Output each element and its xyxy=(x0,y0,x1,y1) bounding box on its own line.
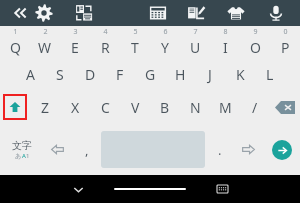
staticText: X xyxy=(71,98,80,117)
staticText: C xyxy=(101,98,110,117)
staticText: E xyxy=(71,38,79,57)
staticText: . xyxy=(218,141,222,159)
button[interactable]: Settings xyxy=(31,0,57,26)
button[interactable]: 6 xyxy=(150,26,180,58)
button[interactable]: C xyxy=(90,90,120,124)
button[interactable]: 7 xyxy=(180,26,210,58)
staticText: 3 xyxy=(73,27,78,37)
staticText: 1 xyxy=(26,152,30,160)
staticText: W xyxy=(38,38,52,57)
staticText: U xyxy=(190,38,201,57)
button[interactable]: G xyxy=(135,58,165,90)
staticText: N xyxy=(190,98,201,117)
button[interactable]: S xyxy=(45,58,75,90)
button[interactable]: 3 xyxy=(60,26,90,58)
button[interactable]: Conversion xyxy=(71,0,97,26)
button[interactable]: 1 xyxy=(0,26,30,58)
staticText: H xyxy=(175,65,186,84)
staticText: , xyxy=(85,141,89,159)
staticText: T xyxy=(131,38,139,57)
button[interactable]: Numbers xyxy=(145,0,171,26)
button[interactable]: B xyxy=(150,90,180,124)
staticText: I xyxy=(223,38,228,57)
staticText: A xyxy=(22,152,26,160)
button[interactable]: H xyxy=(165,58,195,90)
button[interactable]: X xyxy=(60,90,90,124)
staticText: 2 xyxy=(43,27,48,37)
staticText: O xyxy=(250,38,261,57)
staticText: Z xyxy=(41,98,50,117)
button[interactable]: 0 xyxy=(270,26,300,58)
button[interactable]: Cursor left xyxy=(43,124,72,175)
button[interactable]: Hide keyboard xyxy=(64,175,92,203)
button[interactable]: Dictionary xyxy=(183,0,209,26)
staticText: J xyxy=(208,65,212,84)
button[interactable]: Shift xyxy=(0,90,30,124)
staticText: 0 xyxy=(283,27,288,37)
button[interactable]: Change keyboard xyxy=(208,175,236,203)
button[interactable]: V xyxy=(120,90,150,124)
button[interactable]: . xyxy=(205,124,234,175)
staticText: S xyxy=(56,65,64,84)
staticText: 8 xyxy=(223,27,228,37)
button[interactable]: 4 xyxy=(90,26,120,58)
button[interactable]: Switch input mode xyxy=(0,124,43,175)
button[interactable]: Voice input xyxy=(263,0,289,26)
staticText: 6 xyxy=(163,27,168,37)
staticText: / xyxy=(252,98,258,117)
staticText: 7 xyxy=(193,27,198,37)
staticText: D xyxy=(85,65,96,84)
staticText: L xyxy=(266,65,274,84)
staticText: 9 xyxy=(253,27,258,37)
button[interactable]: Backspace xyxy=(270,90,300,124)
staticText: R xyxy=(101,38,110,57)
button[interactable]: Z xyxy=(30,90,60,124)
button[interactable]: , xyxy=(72,124,101,175)
button[interactable]: J xyxy=(195,58,225,90)
button[interactable]: N xyxy=(180,90,210,124)
staticText: 文字 xyxy=(12,139,32,152)
button[interactable]: 5 xyxy=(120,26,150,58)
staticText: 1 xyxy=(13,27,18,37)
staticText: V xyxy=(131,98,140,117)
button[interactable]: Theme xyxy=(223,0,249,26)
button[interactable]: Home xyxy=(113,179,187,199)
button[interactable]: F xyxy=(105,58,135,90)
button[interactable]: A xyxy=(15,58,45,90)
button[interactable]: Cursor right xyxy=(234,124,263,175)
staticText: B xyxy=(160,98,170,117)
staticText: K xyxy=(236,65,245,84)
button[interactable]: Back xyxy=(8,0,34,26)
button[interactable]: / xyxy=(240,90,270,124)
button[interactable]: M xyxy=(210,90,240,124)
staticText: P xyxy=(281,38,290,57)
button[interactable]: 8 xyxy=(210,26,240,58)
staticText: G xyxy=(145,65,156,84)
staticText: F xyxy=(116,65,124,84)
button[interactable]: K xyxy=(225,58,255,90)
button[interactable]: 2 xyxy=(30,26,60,58)
button[interactable]: L xyxy=(255,58,285,90)
staticText: 5 xyxy=(133,27,138,37)
staticText: あ xyxy=(15,152,22,160)
staticText: M xyxy=(219,98,232,117)
staticText: Q xyxy=(10,38,21,57)
staticText: A xyxy=(26,65,35,84)
button[interactable]: Enter xyxy=(263,124,300,175)
button[interactable]: 9 xyxy=(240,26,270,58)
staticText: 4 xyxy=(103,27,108,37)
staticText: Y xyxy=(161,38,169,57)
button[interactable]: D xyxy=(75,58,105,90)
